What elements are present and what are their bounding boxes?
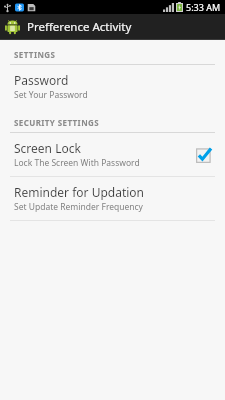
button[interactable]: Password xyxy=(0,65,225,108)
staticText: Screen Lock xyxy=(14,140,81,156)
button[interactable]: Reminder for Updation xyxy=(0,177,225,220)
staticText: SETTINGS xyxy=(14,49,56,60)
button[interactable]: Screen Lock checkbox xyxy=(193,144,215,166)
staticText: Password xyxy=(14,72,69,88)
staticText: Lock The Screen With Password xyxy=(14,157,140,169)
staticText: SECURITY SETTINGS xyxy=(14,117,100,128)
staticText: Reminder for Updation xyxy=(14,184,145,200)
staticText: 5:33 AM xyxy=(186,1,221,13)
staticText: Set Your Password xyxy=(14,89,88,101)
button[interactable]: Screen Lock xyxy=(0,133,225,176)
staticText: Set Update Reminder Frequency xyxy=(14,201,143,213)
button[interactable]: Prefference Activity xyxy=(0,14,225,39)
staticText: Prefference Activity xyxy=(27,19,132,35)
